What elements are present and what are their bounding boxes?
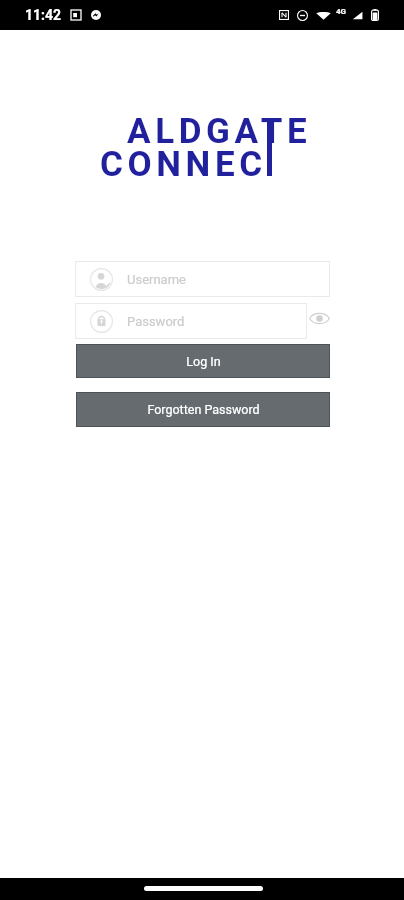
staticText: Password [127, 314, 185, 329]
staticText: Username [127, 272, 186, 287]
button[interactable]: Show password [307, 303, 332, 334]
button[interactable]: Forgotten Password [76, 392, 330, 427]
button[interactable]: Password [75, 303, 307, 339]
button[interactable]: Username [75, 261, 330, 297]
staticText: 11:42 [25, 7, 62, 23]
staticText: ALDGATE [127, 111, 312, 152]
button[interactable]: Log In [76, 344, 330, 378]
staticText: Log In [186, 354, 221, 369]
staticText: Forgotten Password [147, 402, 260, 417]
staticText: 4G [336, 7, 347, 16]
button[interactable]: Home [144, 886, 263, 891]
staticText: CONNEC [100, 144, 267, 185]
